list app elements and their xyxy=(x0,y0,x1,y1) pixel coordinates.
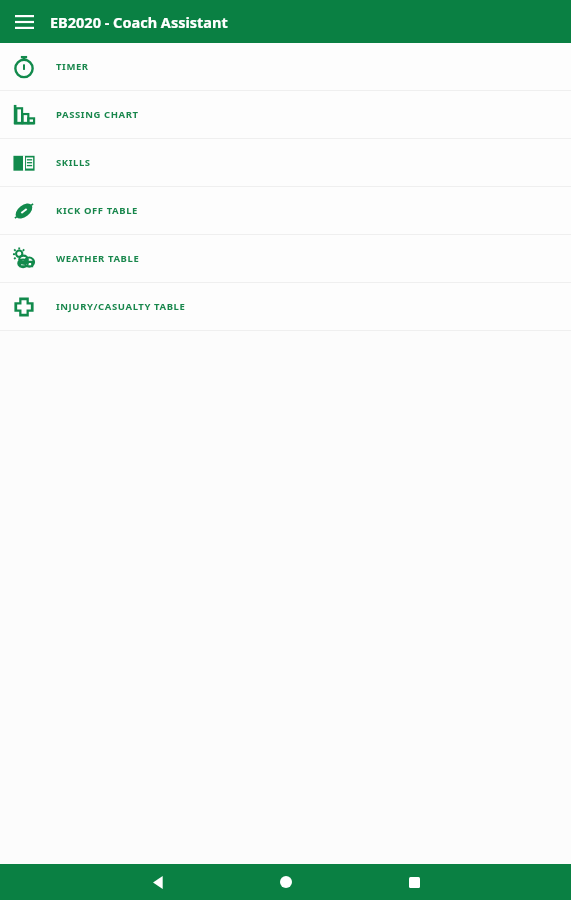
button[interactable]: SKILLS xyxy=(0,139,571,186)
staticText: SKILLS xyxy=(56,156,91,169)
staticText: PASSING CHART xyxy=(56,108,139,121)
button[interactable]: Recent apps xyxy=(394,864,434,900)
button[interactable]: Back xyxy=(138,864,178,900)
button[interactable]: PASSING CHART xyxy=(0,91,571,138)
button[interactable]: Open navigation menu xyxy=(4,2,44,42)
staticText: KICK OFF TABLE xyxy=(56,204,139,217)
button[interactable]: TIMER xyxy=(0,43,571,90)
staticText: EB2020 - Coach Assistant xyxy=(50,12,228,32)
button[interactable]: Home xyxy=(266,864,306,900)
staticText: WEATHER TABLE xyxy=(56,252,140,265)
button[interactable]: KICK OFF TABLE xyxy=(0,187,571,234)
button[interactable]: INJURY/CASUALTY TABLE xyxy=(0,283,571,330)
button[interactable]: WEATHER TABLE xyxy=(0,235,571,282)
staticText: TIMER xyxy=(56,60,89,73)
staticText: INJURY/CASUALTY TABLE xyxy=(56,300,186,313)
